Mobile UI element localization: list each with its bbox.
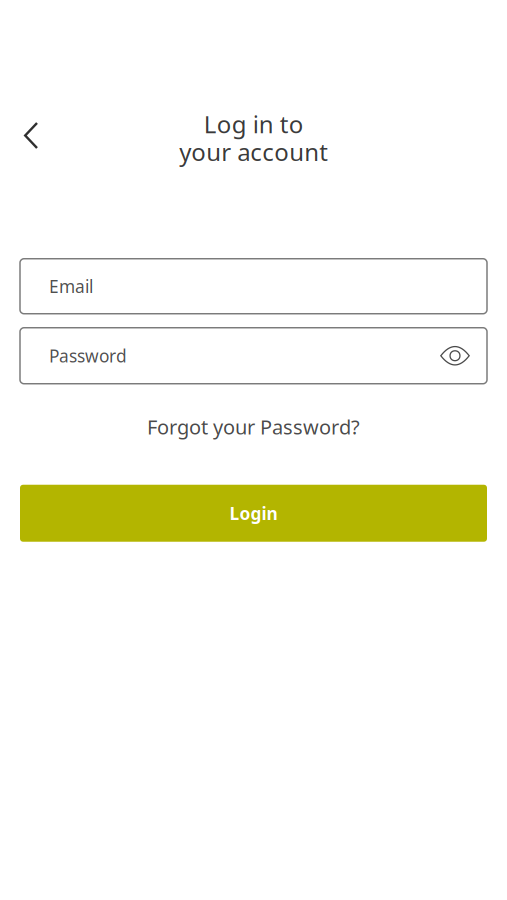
button[interactable]: Back bbox=[0, 111, 507, 160]
staticText: Password bbox=[49, 344, 127, 367]
staticText: Email bbox=[49, 275, 93, 298]
staticText: Log in to your account bbox=[179, 108, 328, 168]
button[interactable]: Forgot your Password? bbox=[0, 403, 507, 451]
button[interactable]: Show password bbox=[440, 347, 470, 365]
staticText: Login bbox=[229, 502, 277, 525]
staticText: Forgot your Password? bbox=[147, 413, 360, 440]
button[interactable]: Login bbox=[0, 485, 507, 542]
